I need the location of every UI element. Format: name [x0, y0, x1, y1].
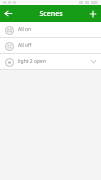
staticText: light 2 open — [18, 58, 47, 65]
button[interactable]: Expand — [85, 54, 101, 69]
button[interactable]: Add scene — [85, 5, 101, 22]
staticText: All on — [18, 26, 32, 33]
button[interactable]: light 2 open — [0, 54, 101, 69]
button[interactable]: All on — [0, 22, 101, 37]
button[interactable]: All off — [0, 38, 101, 53]
button[interactable]: Back — [0, 5, 16, 22]
staticText: All off — [18, 42, 32, 49]
staticText: Scenes — [39, 9, 63, 19]
